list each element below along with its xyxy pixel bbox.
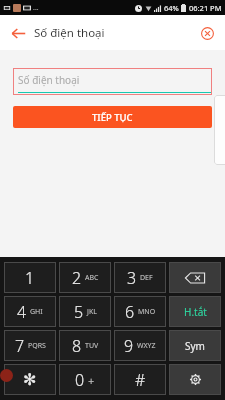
staticText: GHI xyxy=(30,307,43,317)
button[interactable]: H.tắt xyxy=(169,296,221,327)
staticText: 1 xyxy=(25,267,35,289)
staticText: 0 xyxy=(75,369,85,391)
button[interactable]: 8 xyxy=(59,330,111,361)
staticText: 4 xyxy=(17,301,27,323)
staticText: ✻ xyxy=(23,370,37,389)
other: Backspace xyxy=(185,272,205,284)
staticText: 8 xyxy=(72,335,82,357)
staticText: DEF xyxy=(140,273,153,283)
button[interactable]: 7 xyxy=(4,330,56,361)
button[interactable]: ✻ xyxy=(4,364,56,395)
button[interactable]: 1 xyxy=(4,262,56,293)
staticText: WXYZ xyxy=(137,341,156,351)
button[interactable]: 4 xyxy=(4,296,56,327)
button[interactable]: 0 xyxy=(59,364,111,395)
staticText: 3 xyxy=(127,267,137,289)
staticText: 7 xyxy=(15,335,25,357)
button[interactable]: 3 xyxy=(114,262,166,293)
button[interactable]: 9 xyxy=(114,330,166,361)
staticText: Số điện thoại xyxy=(34,25,105,41)
staticText: TIẾP TỤC xyxy=(92,111,133,124)
staticText: PQRS xyxy=(28,341,46,351)
staticText: ... xyxy=(33,3,39,13)
button[interactable]: # xyxy=(114,364,166,395)
staticText: 06:21 PM xyxy=(189,3,222,13)
button[interactable]: Back xyxy=(6,21,30,45)
staticText: MNO xyxy=(138,307,156,317)
button[interactable]: 6 xyxy=(114,296,166,327)
button[interactable]: Keyboard settings xyxy=(169,364,221,395)
button[interactable]: Số điện thoại xyxy=(13,68,212,95)
button[interactable]: Close xyxy=(196,22,218,44)
staticText: + xyxy=(88,373,95,388)
staticText: JKL xyxy=(87,307,97,317)
staticText: ABC xyxy=(85,273,99,283)
staticText: 5 xyxy=(74,301,84,323)
staticText: TUV xyxy=(85,341,99,351)
staticText: 9 xyxy=(124,335,134,357)
button[interactable]: Assistant xyxy=(0,369,13,382)
staticText: # xyxy=(135,369,146,391)
staticText: 6 xyxy=(125,301,135,323)
button[interactable]: Backspace xyxy=(169,262,221,293)
staticText: H.tắt xyxy=(184,305,207,319)
button[interactable]: TIẾP TỤC xyxy=(13,106,212,128)
staticText: Số điện thoại xyxy=(18,73,80,87)
button[interactable]: 5 xyxy=(59,296,111,327)
staticText: Sym xyxy=(185,339,205,353)
button[interactable]: Sym xyxy=(169,330,221,361)
staticText: 64% xyxy=(164,3,179,13)
staticText: 2 xyxy=(72,267,82,289)
button[interactable]: 2 xyxy=(59,262,111,293)
